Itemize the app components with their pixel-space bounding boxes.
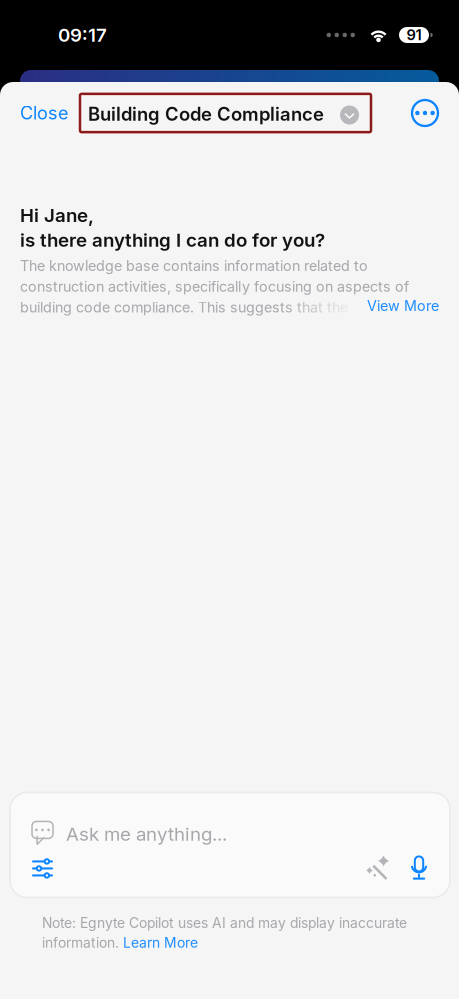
button[interactable]: Learn More: [123, 934, 198, 951]
button[interactable]: Dictate: [408, 856, 430, 881]
staticText: construction activities, specifically fo…: [20, 278, 409, 295]
staticText: building code compliance. This suggests …: [20, 299, 348, 316]
staticText: 09:17: [58, 24, 107, 46]
staticText: View More: [367, 297, 439, 314]
button[interactable]: Close: [20, 96, 68, 130]
staticText: Ask me anything...: [66, 823, 227, 845]
staticText: Learn More: [123, 934, 198, 951]
staticText: Building Code Compliance: [88, 103, 324, 125]
staticText: Note: Egnyte Copilot uses AI and may dis…: [42, 914, 407, 931]
button[interactable]: View More: [367, 297, 439, 314]
staticText: is there anything I can do for you?: [20, 229, 325, 251]
staticText: Hi Jane,: [20, 204, 94, 227]
button[interactable]: More options: [412, 100, 438, 126]
staticText: Close: [20, 102, 68, 124]
button[interactable]: Building Code Compliance: [80, 94, 371, 132]
staticText: The knowledge base contains information …: [20, 257, 368, 274]
button[interactable]: Improve prompt: [362, 854, 390, 882]
button[interactable]: Prompt options: [32, 858, 53, 879]
staticText: 91: [406, 26, 421, 44]
staticText: information.: [42, 934, 123, 951]
